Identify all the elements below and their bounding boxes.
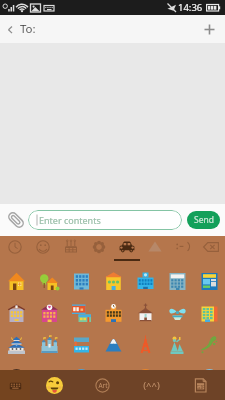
button[interactable]: Emoji 24 xyxy=(65,361,97,393)
button[interactable]: Attach file xyxy=(3,204,28,236)
button[interactable]: Emoji 14 xyxy=(193,297,225,329)
button[interactable]: Emoji 27 xyxy=(161,361,193,393)
button[interactable]: Emoji 7 xyxy=(193,265,225,297)
button[interactable]: Emoji 20 xyxy=(161,329,193,361)
button[interactable]: Places xyxy=(113,236,141,265)
staticText: GIF xyxy=(196,383,205,390)
button[interactable]: Back xyxy=(0,15,20,43)
button[interactable]: Enter contents xyxy=(28,210,182,230)
button[interactable]: Celebration xyxy=(57,236,85,265)
button[interactable]: Emoji 15 xyxy=(0,329,33,361)
button[interactable]: Recent xyxy=(0,236,29,265)
button[interactable]: Emoji 2 xyxy=(33,265,65,297)
button[interactable]: Emoji 13 xyxy=(161,297,193,329)
button[interactable]: Emoticons xyxy=(169,236,197,265)
button[interactable]: Emoji 18 xyxy=(97,329,129,361)
button[interactable]: Emoji 9 xyxy=(33,297,65,329)
button[interactable]: Emoji 19 xyxy=(129,329,161,361)
button[interactable]: Emoji 17 xyxy=(65,329,97,361)
staticText: Send xyxy=(194,214,214,226)
button[interactable]: Art xyxy=(78,370,127,400)
button[interactable]: Emoji 25 xyxy=(97,361,129,393)
button[interactable]: Emoji 8 xyxy=(0,297,33,329)
button[interactable]: Emoji 5 xyxy=(129,265,161,297)
button[interactable]: Emoji 28 xyxy=(193,361,225,393)
button[interactable]: Emoji 6 xyxy=(161,265,193,297)
button[interactable]: Emoji 11 xyxy=(97,297,129,329)
button[interactable]: Emoji 21 xyxy=(193,329,225,361)
button[interactable]: Emoji 3 xyxy=(65,265,97,297)
button[interactable]: GIF xyxy=(176,370,225,400)
staticText: Enter contents xyxy=(39,214,101,226)
button[interactable]: Emoji 16 xyxy=(33,329,65,361)
button[interactable]: Add xyxy=(193,15,225,43)
button[interactable]: Kaomoji xyxy=(127,370,176,400)
button[interactable]: Switch keyboard xyxy=(0,370,30,400)
button[interactable]: Emoji 23 xyxy=(33,361,65,393)
button[interactable]: Emoji 1 xyxy=(0,265,33,297)
button[interactable]: Delete xyxy=(197,236,225,265)
staticText: Art xyxy=(98,381,108,390)
button[interactable]: Emoji 22 xyxy=(0,361,33,393)
button[interactable]: Emoji xyxy=(30,370,78,400)
button[interactable]: Nature xyxy=(85,236,113,265)
button[interactable]: Emoji 4 xyxy=(97,265,129,297)
staticText: To: xyxy=(20,21,36,37)
button[interactable]: Send xyxy=(187,211,220,229)
button[interactable]: Emoji 12 xyxy=(129,297,161,329)
button[interactable]: Objects xyxy=(141,236,169,265)
button[interactable]: Smileys xyxy=(29,236,57,265)
staticText: 14:36 xyxy=(178,1,203,14)
button[interactable]: Emoji 26 xyxy=(129,361,161,393)
staticText: (^^) xyxy=(143,379,160,392)
button[interactable]: Emoji 10 xyxy=(65,297,97,329)
